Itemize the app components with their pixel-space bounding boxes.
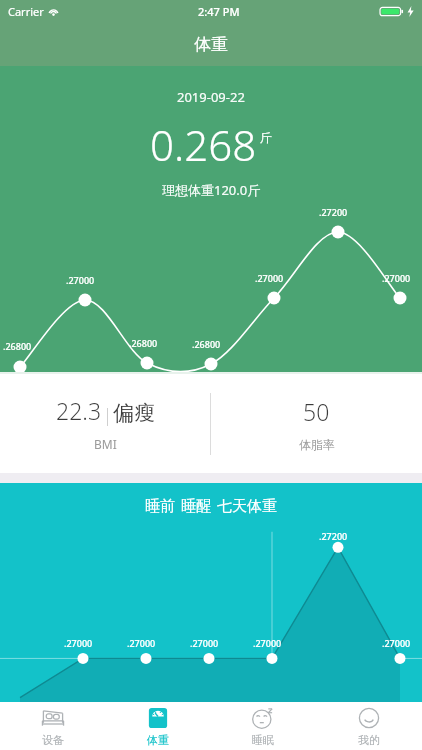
staticText: 睡前 xyxy=(145,497,175,516)
button[interactable]: 睡醒 xyxy=(181,497,211,516)
button[interactable]: 睡前 xyxy=(145,497,175,516)
staticText: 睡眠 xyxy=(252,733,274,747)
staticText: Carrier xyxy=(8,4,44,19)
staticText: 体重 xyxy=(194,34,228,55)
button[interactable]: 22.3 xyxy=(0,395,210,452)
button[interactable]: 50 xyxy=(211,396,422,452)
staticText: 设备 xyxy=(42,733,64,747)
staticText: 2:47 PM xyxy=(198,4,240,19)
staticText: 体重 xyxy=(147,733,169,747)
staticText: .27000 xyxy=(253,637,282,649)
staticText: 我的 xyxy=(358,733,380,747)
staticText: .26800 xyxy=(3,340,32,352)
staticText: BMI xyxy=(94,436,117,452)
staticText: .27200 xyxy=(319,530,348,542)
staticText: .26800 xyxy=(129,337,158,349)
staticText: 22.3 xyxy=(56,395,102,426)
staticText: 斤 xyxy=(260,130,272,145)
button[interactable]: 体重 xyxy=(105,702,210,750)
staticText: .27000 xyxy=(190,637,219,649)
staticText: .27000 xyxy=(382,637,411,649)
staticText: 理想体重120.0斤 xyxy=(162,181,261,199)
staticText: 2019-09-22 xyxy=(177,88,245,106)
button[interactable]: 七天体重 xyxy=(217,497,277,516)
staticText: .27000 xyxy=(64,637,93,649)
staticText: .27200 xyxy=(319,206,348,218)
staticText: 睡醒 xyxy=(181,497,211,516)
button[interactable]: 睡眠 xyxy=(210,702,316,750)
staticText: .27000 xyxy=(66,274,95,286)
button[interactable]: 我的 xyxy=(316,702,422,750)
staticText: .27000 xyxy=(127,637,156,649)
staticText: 0.268 xyxy=(150,116,257,173)
staticText: 50 xyxy=(303,396,330,427)
button[interactable]: 设备 xyxy=(0,702,105,750)
staticText: 七天体重 xyxy=(217,497,277,516)
staticText: 偏瘦 xyxy=(113,400,155,426)
staticText: .26800 xyxy=(192,338,221,350)
staticText: .27000 xyxy=(382,272,411,284)
staticText: 体脂率 xyxy=(299,437,335,452)
staticText: .27000 xyxy=(255,272,284,284)
